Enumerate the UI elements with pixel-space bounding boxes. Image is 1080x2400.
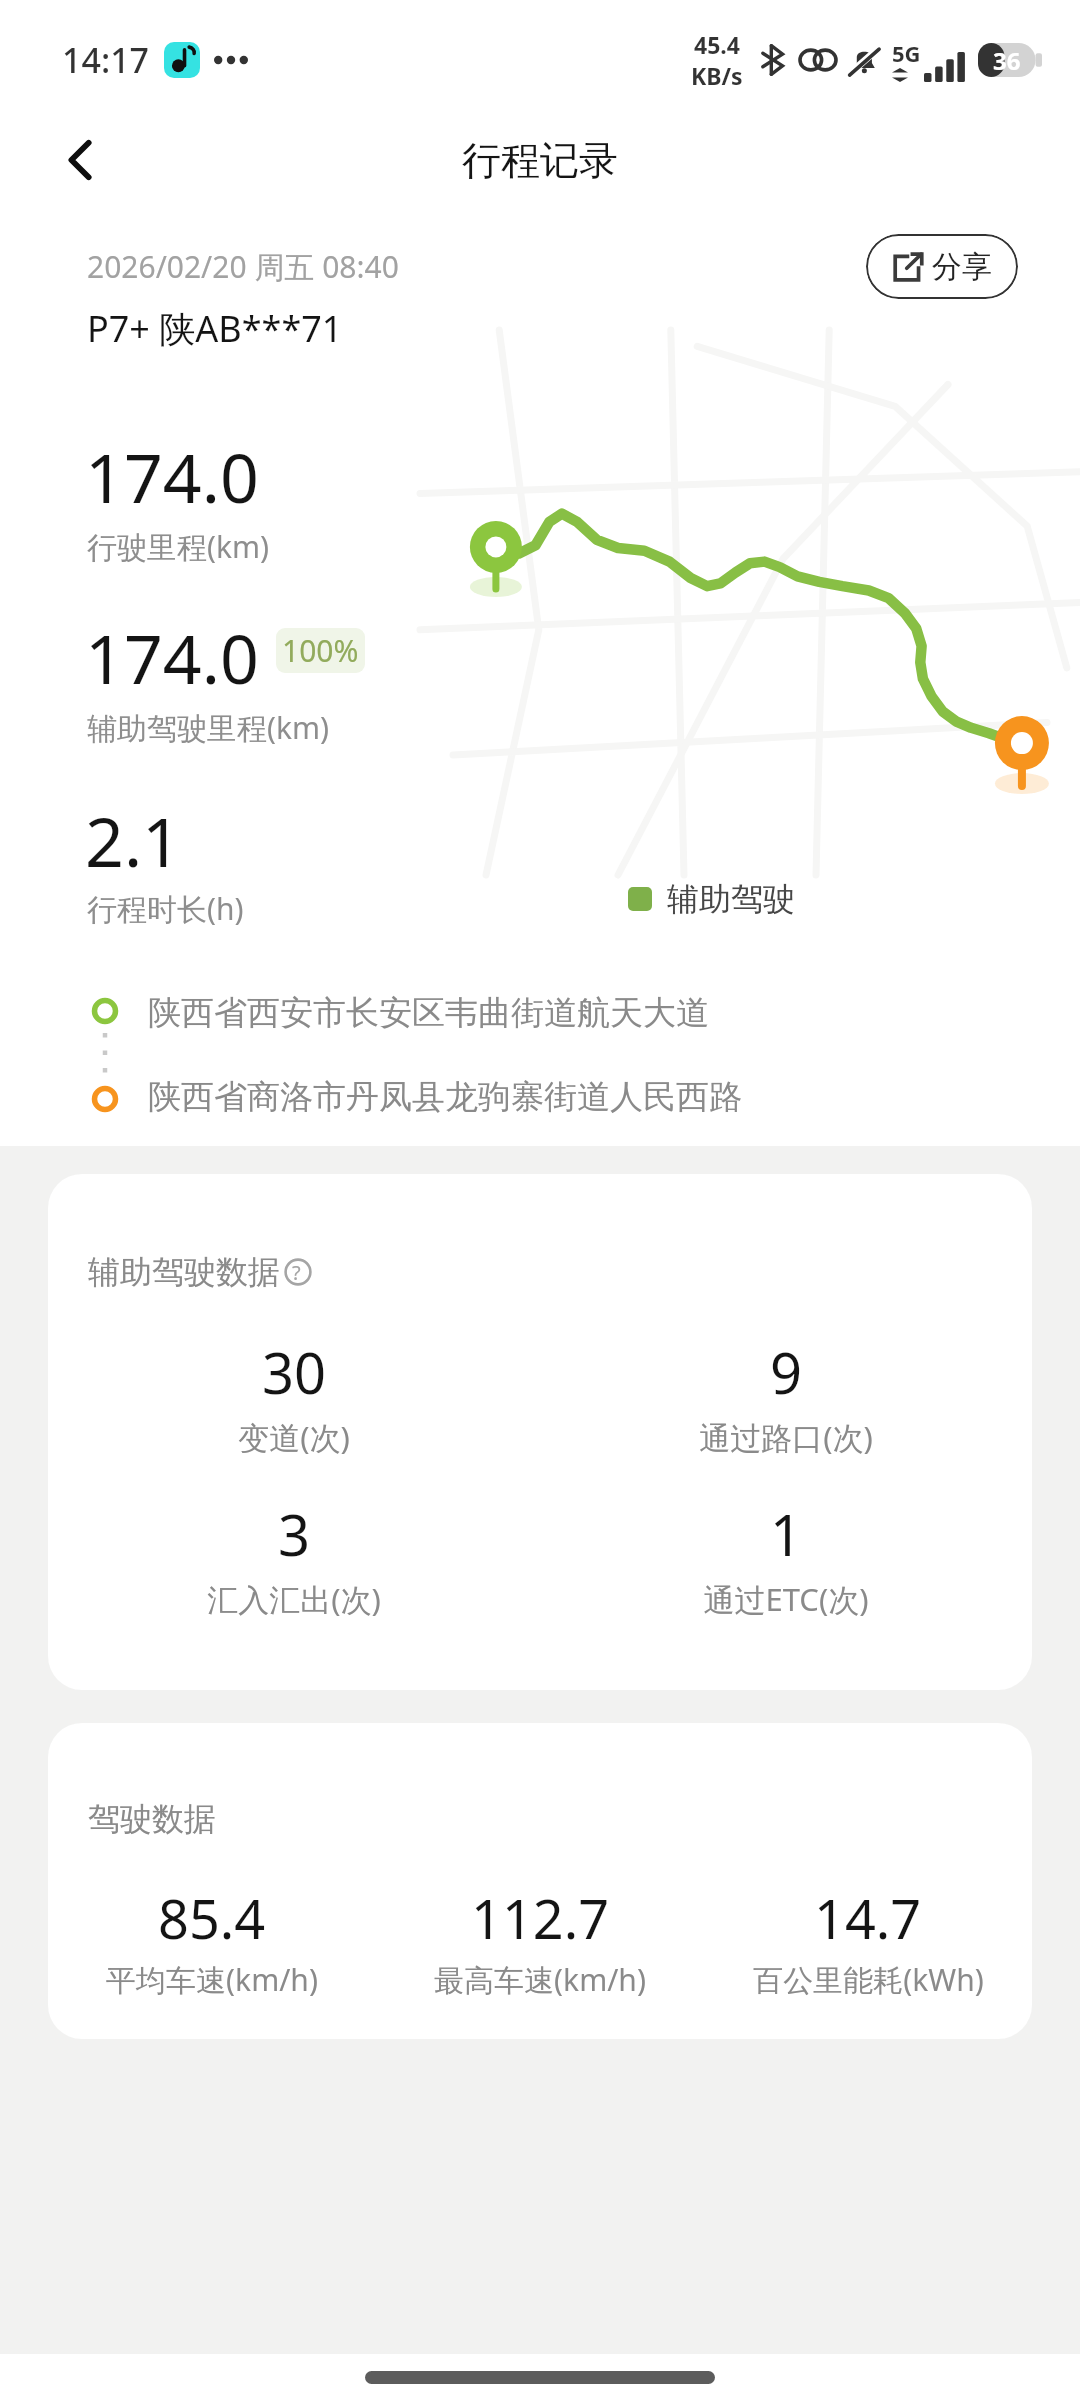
staticText: 通过ETC(次) xyxy=(703,1578,869,1620)
staticText: 汇入汇出(次) xyxy=(207,1578,381,1620)
staticText: 9 xyxy=(770,1334,803,1410)
staticText: 行程时长(h) xyxy=(87,888,244,929)
staticText: 辅助驾驶数据 xyxy=(88,1252,280,1292)
staticText: 辅助驾驶 xyxy=(667,879,795,919)
staticText: 112.7 xyxy=(471,1881,610,1955)
staticText: 14:17 xyxy=(62,37,150,83)
staticText: 最高车速(km/h) xyxy=(434,1959,646,2000)
button[interactable]: Back xyxy=(42,121,120,199)
staticText: 1 xyxy=(770,1496,803,1572)
staticText: 14.7 xyxy=(814,1881,922,1955)
staticText: 174.0 xyxy=(85,430,259,523)
staticText: 辅助驾驶里程(km) xyxy=(87,707,330,748)
staticText: 行程记录 xyxy=(462,136,618,185)
staticText: 30 xyxy=(262,1334,327,1410)
staticText: ? xyxy=(292,1259,301,1286)
staticText: 3 xyxy=(278,1496,311,1572)
staticText: KB/s xyxy=(691,60,743,91)
button[interactable]: 辅助驾驶数据 xyxy=(48,1174,1032,1690)
staticText: 5G xyxy=(892,38,921,68)
staticText: 百公里能耗(kWh) xyxy=(753,1959,984,2000)
staticText: 174.0 xyxy=(85,611,259,704)
staticText: 通过路口(次) xyxy=(699,1416,873,1458)
staticText: P7+ 陕AB***71 xyxy=(87,304,343,353)
staticText: 驾驶数据 xyxy=(88,1799,216,1839)
staticText: 100% xyxy=(282,630,359,671)
staticText: 变道(次) xyxy=(238,1416,350,1458)
staticText: 陕西省商洛市丹凤县龙驹寨街道人民西路 xyxy=(148,1076,742,1118)
button[interactable]: 驾驶数据 xyxy=(48,1723,1032,2039)
staticText: 行驶里程(km) xyxy=(87,526,270,567)
staticText: 36 xyxy=(993,44,1021,77)
staticText: 平均车速(km/h) xyxy=(106,1959,318,2000)
staticText: 2026/02/20 周五 08:40 xyxy=(87,246,399,287)
staticText: 陕西省西安市长安区韦曲街道航天大道 xyxy=(148,992,709,1034)
staticText: 2.1 xyxy=(85,794,182,887)
staticText: 85.4 xyxy=(158,1881,266,1955)
staticText: 分享 xyxy=(932,248,992,286)
staticText: 45.4 xyxy=(694,29,740,60)
button[interactable]: 分享 xyxy=(866,234,1018,299)
